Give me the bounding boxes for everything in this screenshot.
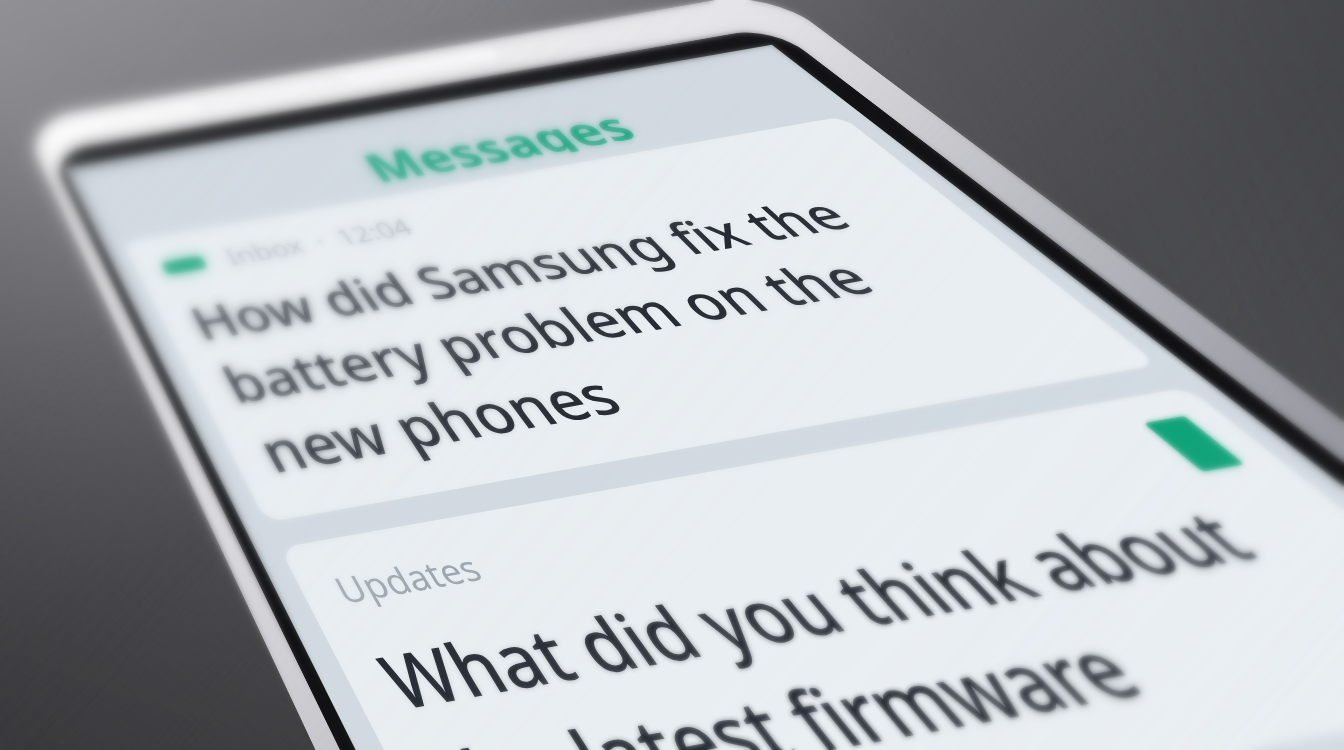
staticText: How did Samsung fix the bbox=[178, 185, 869, 354]
button[interactable]: Messages bbox=[349, 100, 644, 185]
staticText: the latest firmware bbox=[414, 614, 1172, 750]
staticText: Inbox · 12:04 bbox=[218, 212, 420, 271]
staticText: What did you think about bbox=[361, 489, 1284, 731]
button[interactable]: Inbox · 12:04 bbox=[478, 726, 1344, 750]
staticText: Inbox · 12:04 bbox=[218, 212, 420, 271]
staticText: the latest firmware bbox=[414, 614, 1172, 750]
staticText: Inbox · 12:04 bbox=[218, 212, 420, 271]
button[interactable]: Inbox · 12:04 bbox=[122, 116, 1159, 523]
button[interactable]: Inbox · 12:04 bbox=[478, 726, 1344, 750]
button[interactable]: Updates bbox=[279, 387, 1344, 750]
staticText: What did you think about bbox=[361, 489, 1284, 731]
staticText: new phones bbox=[244, 358, 640, 489]
staticText: Updates bbox=[325, 544, 491, 613]
staticText: Inbox · 12:04 bbox=[218, 212, 420, 271]
staticText: battery problem on the bbox=[210, 245, 893, 418]
staticText: Messages bbox=[349, 100, 644, 185]
button[interactable]: Messages bbox=[349, 100, 644, 185]
button[interactable]: Updates bbox=[279, 387, 1344, 750]
button[interactable]: Inbox · 12:04 bbox=[122, 116, 1159, 523]
button[interactable]: Messages bbox=[349, 100, 644, 185]
staticText: battery problem on the bbox=[210, 245, 893, 418]
staticText: What did you think about bbox=[361, 489, 1284, 731]
staticText: What did you think about bbox=[361, 489, 1284, 731]
staticText: new phones bbox=[244, 358, 640, 489]
button[interactable]: Updates bbox=[279, 387, 1344, 750]
staticText: How did Samsung fix the bbox=[178, 185, 869, 354]
staticText: Messages bbox=[349, 100, 644, 185]
button[interactable]: Updates bbox=[279, 387, 1344, 750]
button[interactable]: Inbox · 12:04 bbox=[122, 116, 1159, 523]
staticText: the latest firmware bbox=[414, 614, 1172, 750]
staticText: new phones bbox=[244, 358, 640, 489]
staticText: Updates bbox=[325, 544, 491, 613]
staticText: Updates bbox=[325, 544, 491, 613]
staticText: Messages bbox=[349, 100, 644, 185]
button[interactable]: Inbox · 12:04 bbox=[478, 726, 1344, 750]
button[interactable]: Inbox · 12:04 bbox=[122, 116, 1159, 523]
staticText: How did Samsung fix the bbox=[178, 185, 869, 354]
staticText: battery problem on the bbox=[210, 245, 893, 418]
button[interactable]: Messages bbox=[349, 100, 644, 185]
staticText: new phones bbox=[244, 358, 640, 489]
staticText: Messages bbox=[349, 100, 644, 185]
button[interactable]: Inbox · 12:04 bbox=[478, 726, 1344, 750]
staticText: How did Samsung fix the bbox=[178, 185, 869, 354]
staticText: the latest firmware bbox=[414, 614, 1172, 750]
staticText: Updates bbox=[325, 544, 491, 613]
staticText: battery problem on the bbox=[210, 245, 893, 418]
